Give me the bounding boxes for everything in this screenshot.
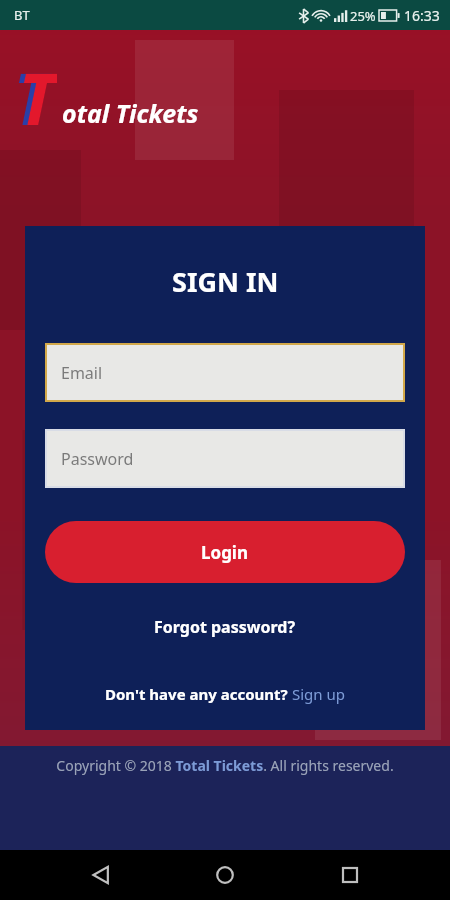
- staticText: Email: [61, 362, 103, 384]
- staticText: T: [18, 48, 57, 138]
- button[interactable]: Don't have any account?: [99, 680, 351, 708]
- staticText: Copyright © 2018 Total Tickets. All righ…: [56, 756, 394, 775]
- staticText: 16:33: [404, 6, 440, 25]
- staticText: Sign up: [292, 684, 345, 704]
- button[interactable]: Login: [45, 521, 405, 583]
- button[interactable]: Email: [45, 343, 405, 402]
- staticText: BT: [14, 6, 30, 24]
- staticText: 25%: [350, 7, 376, 25]
- staticText: SIGN IN: [172, 263, 279, 300]
- button[interactable]: Back: [77, 851, 125, 899]
- button[interactable]: Home: [201, 851, 249, 899]
- button[interactable]: Forgot password?: [144, 611, 306, 643]
- button[interactable]: Password: [45, 429, 405, 488]
- staticText: Password: [61, 448, 134, 470]
- staticText: otal Tickets: [62, 96, 199, 130]
- staticText: Don't have any account?: [105, 684, 292, 704]
- staticText: T: [13, 48, 52, 138]
- staticText: Login: [201, 541, 249, 564]
- button[interactable]: Recent apps: [326, 851, 374, 899]
- staticText: Forgot password?: [154, 616, 296, 638]
